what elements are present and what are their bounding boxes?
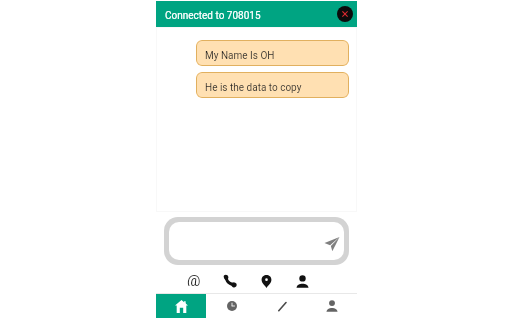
button[interactable]: Email — [187, 274, 201, 288]
button[interactable]: He is the data to copy — [196, 72, 349, 98]
button[interactable]: Location — [259, 274, 273, 288]
staticText: He is the data to copy — [205, 82, 302, 94]
button[interactable]: My Name Is OH — [196, 40, 349, 66]
button[interactable]: Compose — [257, 294, 307, 318]
staticText: @ — [187, 272, 201, 286]
button[interactable]: Recents — [206, 294, 257, 318]
button[interactable]: Send — [169, 222, 344, 260]
button[interactable]: Send — [323, 235, 341, 253]
button[interactable]: Call — [223, 274, 237, 288]
staticText: Connected to 708015 — [165, 10, 261, 22]
button[interactable]: Disconnect — [337, 6, 353, 22]
button[interactable]: Profile — [307, 294, 357, 318]
staticText: My Name Is OH — [205, 50, 275, 62]
button[interactable]: Home — [156, 294, 206, 318]
button[interactable]: Contact — [295, 274, 309, 288]
